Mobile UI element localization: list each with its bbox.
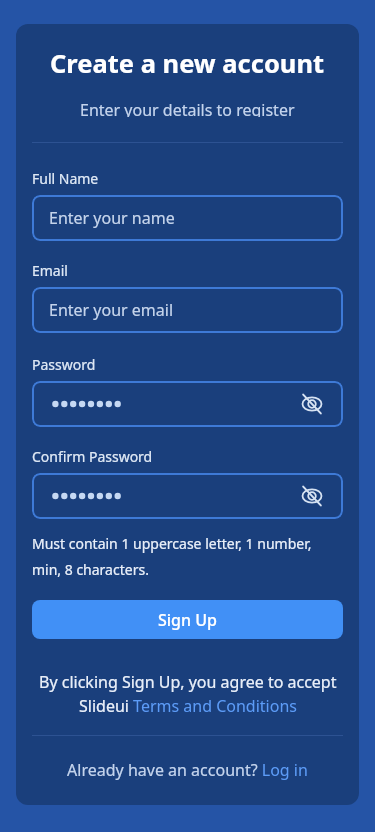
staticText: min, 8 characters. xyxy=(32,560,149,579)
staticText: Password xyxy=(32,355,96,372)
staticText: Email xyxy=(32,261,68,278)
button[interactable]: Slideui Terms and Conditions xyxy=(16,694,359,718)
staticText: Confirm Password xyxy=(32,447,153,464)
button[interactable] xyxy=(300,392,324,416)
button[interactable]: Enter your email xyxy=(32,287,343,333)
staticText: Enter your name xyxy=(49,207,175,229)
button[interactable]: Already have an account? Log in xyxy=(16,758,359,782)
staticText: Full Name xyxy=(32,169,99,186)
button[interactable]: Sign Up xyxy=(32,600,343,639)
staticText: By clicking Sign Up, you agree to accept xyxy=(39,671,337,693)
button[interactable]: Enter your name xyxy=(32,195,343,241)
staticText: Enter your details to register xyxy=(80,99,295,117)
staticText: Create a new account xyxy=(50,46,325,78)
button[interactable] xyxy=(32,381,343,427)
staticText: Already have an account? Log in xyxy=(67,759,308,781)
staticText: Enter your email xyxy=(49,299,174,321)
staticText: Sign Up xyxy=(158,609,217,631)
button[interactable] xyxy=(32,473,343,519)
button[interactable] xyxy=(300,484,324,508)
staticText: Slideui Terms and Conditions xyxy=(79,695,297,717)
staticText: Must contain 1 uppercase letter, 1 numbe… xyxy=(32,534,312,553)
